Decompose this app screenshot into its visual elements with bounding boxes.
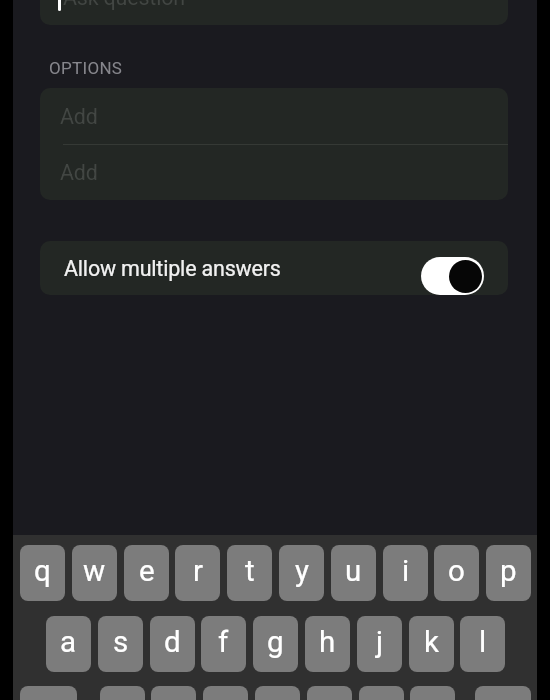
button[interactable]: Allow multiple answers [40,241,508,295]
button[interactable]: j [357,616,402,672]
button[interactable]: u [331,545,376,601]
button[interactable]: y [279,545,324,601]
staticText: p [500,554,517,589]
button[interactable]: r [175,545,220,601]
staticText: l [479,625,487,660]
staticText: j [376,625,384,660]
button[interactable]: i [383,545,428,601]
button[interactable]: Add [40,144,508,200]
staticText: Add [60,104,98,129]
staticText: w [83,554,106,589]
staticText: r [193,554,203,589]
button[interactable]: d [150,616,195,672]
button[interactable]: w [72,545,117,601]
button[interactable]: Shift [20,686,77,700]
button[interactable]: t [227,545,272,601]
staticText: q [34,554,51,589]
staticText: y [295,554,309,589]
staticText: k [424,625,439,660]
button[interactable]: m [410,686,455,700]
staticText: e [139,554,155,589]
staticText: Add [60,160,98,185]
staticText: OPTIONS [49,58,123,78]
button[interactable]: v [255,686,300,700]
button[interactable]: g [253,616,298,672]
button[interactable]: q [20,545,65,601]
button[interactable]: s [98,616,143,672]
staticText: t [245,554,255,589]
staticText: o [448,554,465,589]
button[interactable]: f [201,616,246,672]
button[interactable]: e [124,545,169,601]
staticText: h [319,625,336,660]
button[interactable]: a [46,616,91,672]
button[interactable]: o [434,545,479,601]
button[interactable]: l [460,616,505,672]
staticText: d [164,625,181,660]
button[interactable]: Backspace [475,686,531,700]
staticText: s [113,625,129,660]
staticText: Ask question [63,0,185,10]
button[interactable]: c [203,686,248,700]
button[interactable]: n [359,686,404,700]
button[interactable]: z [100,686,145,700]
staticText: Allow multiple answers [64,256,281,281]
staticText: i [402,554,410,589]
staticText: g [267,625,284,660]
staticText: f [218,625,229,660]
button[interactable]: p [486,545,531,601]
button[interactable]: b [307,686,352,700]
button[interactable]: Allow multiple answers, on [421,257,484,295]
button[interactable]: x [151,686,196,700]
staticText: a [60,625,77,660]
button[interactable]: Ask question [40,0,508,25]
button[interactable]: k [409,616,454,672]
staticText: u [345,554,362,589]
button[interactable]: h [305,616,350,672]
